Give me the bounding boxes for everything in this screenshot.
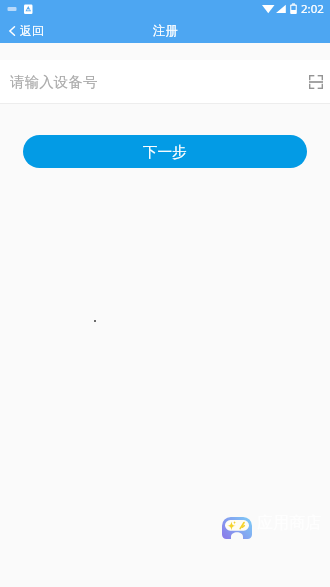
staticText: 返回	[20, 23, 44, 38]
button[interactable]: 下一步	[23, 135, 307, 168]
button[interactable]: Scan QR code	[302, 60, 330, 103]
staticText: 请输入设备号	[10, 73, 98, 91]
staticText: 下一步	[143, 143, 187, 161]
staticText: 2:02	[301, 1, 324, 17]
staticText: 注册	[153, 23, 178, 39]
button[interactable]: 返回	[0, 18, 53, 43]
